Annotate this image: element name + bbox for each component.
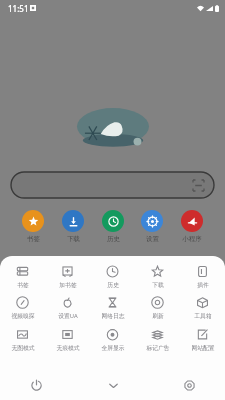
button[interactable]: Settings [179, 375, 199, 395]
button[interactable]: 全屏显示 [90, 326, 135, 353]
button[interactable]: 小程序 [179, 210, 205, 243]
staticText: 历史 [107, 235, 120, 243]
button[interactable]: 工具箱 [180, 294, 225, 321]
staticText: 工具箱 [194, 312, 212, 319]
staticText: 设置UA [58, 312, 78, 320]
button[interactable]: 网络日志 [90, 294, 135, 321]
button[interactable]: Collapse [103, 375, 123, 395]
other: Scan [193, 180, 204, 191]
button[interactable]: 加书签 [45, 263, 90, 290]
staticText: 视频嗅探 [11, 312, 35, 319]
button[interactable]: 历史 [100, 210, 126, 243]
button[interactable]: 标记广告 [135, 326, 180, 353]
staticText: 插件 [197, 281, 209, 288]
button[interactable]: 下载 [135, 263, 180, 290]
button[interactable]: 视频嗅探 [0, 294, 45, 321]
button[interactable]: 书签 [0, 263, 45, 290]
staticText: 标记广告 [146, 344, 170, 351]
staticText: 下载 [152, 281, 164, 288]
button[interactable]: 插件 [180, 263, 225, 290]
staticText: 设置 [146, 235, 159, 243]
staticText: 小程序 [182, 235, 202, 243]
staticText: 加书签 [59, 281, 77, 288]
button[interactable]: 下载 [60, 210, 86, 243]
button[interactable]: 历史 [90, 263, 135, 290]
button[interactable]: 网站配置 [180, 326, 225, 353]
staticText: 历史 [107, 281, 119, 288]
button[interactable]: 刷新 [135, 294, 180, 321]
staticText: 网络日志 [101, 312, 125, 319]
button[interactable]: 书签 [20, 210, 46, 243]
button[interactable]: 无图模式 [0, 326, 45, 353]
staticText: 全屏显示 [101, 344, 125, 351]
staticText: 下载 [67, 235, 80, 243]
button[interactable]: Scan [11, 172, 214, 198]
button[interactable]: 设置UA [45, 294, 90, 322]
staticText: 书签 [17, 281, 29, 288]
button[interactable]: 无痕模式 [45, 326, 90, 353]
staticText: 刷新 [152, 312, 164, 319]
staticText: 无痕模式 [56, 344, 80, 351]
staticText: 11:51 [8, 3, 29, 14]
staticText: 网站配置 [191, 344, 215, 351]
button[interactable]: Exit [26, 375, 46, 395]
staticText: 无图模式 [11, 344, 35, 351]
button[interactable]: 设置 [139, 210, 165, 243]
staticText: 书签 [27, 235, 40, 243]
